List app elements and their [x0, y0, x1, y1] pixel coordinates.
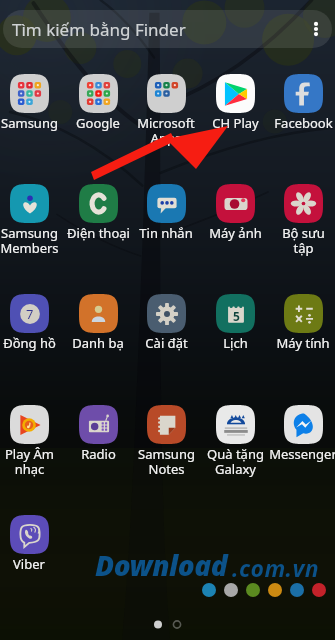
- button[interactable]: Tin nhắn: [132, 184, 200, 242]
- staticText: Viber: [13, 555, 45, 573]
- button[interactable]: Samsung Members: [0, 184, 63, 257]
- button[interactable]: Điện thoại: [64, 184, 132, 242]
- staticText: Đồng hồ: [3, 334, 56, 352]
- staticText: Facebook: [274, 114, 333, 132]
- button[interactable]: Facebook: [269, 74, 335, 132]
- staticText: Play Âm nhạc: [5, 445, 54, 478]
- staticText: Samsung Notes: [138, 445, 195, 478]
- staticText: Download: [95, 546, 228, 584]
- button[interactable]: Radio: [64, 405, 132, 463]
- button[interactable]: Samsung Notes: [132, 405, 200, 478]
- button[interactable]: Bộ sưu tập: [269, 184, 335, 257]
- button[interactable]: Danh bạ: [64, 294, 132, 352]
- staticText: 7: [26, 305, 34, 323]
- button[interactable]: Tìm kiếm bằng Finder: [3, 10, 332, 48]
- button[interactable]: 5: [201, 294, 269, 352]
- button[interactable]: Google: [64, 74, 132, 132]
- staticText: Máy ảnh: [209, 224, 262, 242]
- button[interactable]: Máy ảnh: [201, 184, 269, 242]
- staticText: Lịch: [223, 334, 248, 352]
- staticText: Samsung Members: [0, 224, 59, 257]
- staticText: Google: [76, 114, 120, 132]
- button[interactable]: Microsoft Apps: [132, 74, 200, 147]
- button[interactable]: Samsung: [0, 74, 63, 132]
- button[interactable]: Cài đặt: [132, 294, 200, 352]
- staticText: .com.vn: [232, 552, 320, 583]
- staticText: Máy tính: [276, 334, 330, 352]
- staticText: Quà tặng Galaxy: [207, 445, 264, 478]
- staticText: Messenger: [269, 445, 335, 463]
- staticText: Bộ sưu tập: [282, 224, 325, 257]
- button[interactable]: Messenger: [269, 405, 335, 463]
- staticText: Microsoft Apps: [137, 114, 195, 147]
- staticText: Samsung: [1, 114, 58, 132]
- staticText: Tin nhắn: [139, 224, 193, 242]
- staticText: 5: [233, 308, 240, 324]
- staticText: Điện thoại: [67, 224, 130, 242]
- button[interactable]: CH Play: [201, 74, 269, 132]
- staticText: Tìm kiếm bằng Finder: [12, 18, 186, 41]
- button[interactable]: Viber: [0, 515, 63, 573]
- staticText: Danh bạ: [72, 334, 124, 352]
- button[interactable]: Play Âm nhạc: [0, 405, 63, 478]
- button[interactable]: Máy tính: [269, 294, 335, 352]
- button[interactable]: More options: [300, 10, 332, 48]
- staticText: Radio: [81, 445, 116, 463]
- button[interactable]: Quà tặng Galaxy: [201, 405, 269, 478]
- staticText: CH Play: [212, 114, 259, 132]
- button[interactable]: 7: [0, 294, 63, 352]
- staticText: Cài đặt: [145, 334, 188, 352]
